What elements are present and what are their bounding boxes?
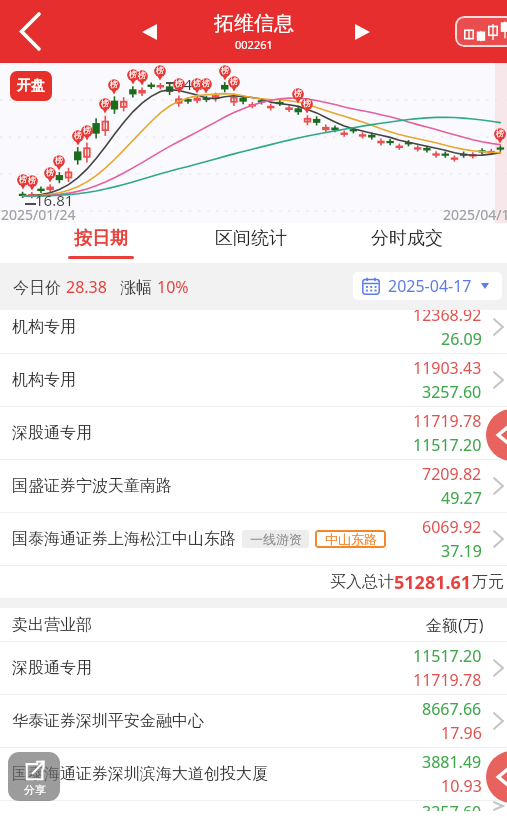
staticText: 按日期 [74,227,128,250]
staticText: 8667.66 [422,698,482,720]
staticText: 榜 [230,76,238,86]
staticText: 涨幅 [120,276,157,298]
staticText: 3257.60 [422,801,482,811]
staticText: 2025/04/1 [443,205,507,224]
staticText: 区间统计 [215,227,287,250]
staticText: 榜 [175,78,183,88]
staticText: 榜 [221,65,229,75]
staticText: 10.93 [441,775,482,797]
button[interactable]: 国泰海通证券深圳滨海大道创投大厦 [0,748,507,800]
staticText: 一线游资 [250,531,302,547]
staticText: 开盘 [17,77,45,95]
staticText: 华泰证券深圳平安金融中心 [12,711,204,731]
staticText: 中山东路 [325,531,377,547]
staticText: 机构专用 [12,317,76,337]
staticText: 7209.82 [422,463,482,485]
staticText: 机构专用 [12,370,76,390]
staticText: 分时成交 [371,227,443,250]
staticText: 拓维信息 [214,11,294,36]
staticText: 11517.20 [413,434,482,456]
staticText: 国泰海通证券上海松江中山东路 [12,529,236,549]
staticText: 万元 [472,572,504,592]
button[interactable]: Next stock [342,11,383,53]
staticText: 金额(万) [426,614,484,636]
button[interactable]: Expand panel [486,409,507,461]
staticText: 17.96 [441,722,482,744]
staticText: 榜 [303,98,311,108]
staticText: 分享 [24,783,46,797]
staticText: 10% [157,276,189,298]
staticText: 3881.49 [422,751,482,773]
button[interactable]: 分时成交 [352,223,462,263]
staticText: 买入总计 [330,572,394,592]
staticText: 11719.78 [413,669,482,691]
staticText: 榜 [46,167,54,177]
staticText: 榜 [28,175,36,185]
staticText: 16.81 [35,190,74,210]
button[interactable]: 机构专用 [0,354,507,406]
staticText: 榜 [294,88,302,98]
staticText: 榜 [101,98,109,108]
staticText: 11903.43 [413,357,482,379]
staticText: 榜 [202,78,210,88]
staticText: 44.1 [175,74,205,94]
staticText: 37.19 [441,540,482,562]
staticText: 榜 [55,155,63,165]
staticText: 002261 [235,37,273,52]
staticText: 榜 [138,70,146,80]
staticText: 26.09 [441,328,482,350]
button[interactable]: Previous stock [129,11,170,53]
staticText: 51281.61 [394,570,472,595]
staticText: 12368.92 [413,310,482,326]
button[interactable]: 按日期 [46,223,156,263]
staticText: 榜 [496,128,504,138]
staticText: 国盛证券宁波天童南路 [12,476,172,496]
staticText: 榜 [83,125,91,135]
staticText: 11719.78 [413,410,482,432]
staticText: 榜 [19,174,27,184]
staticText: 11517.20 [413,645,482,667]
staticText: 2025/01/24 [1,205,76,224]
staticText: 榜 [156,65,164,75]
staticText: 49.27 [441,487,482,509]
staticText: 卖出营业部 [12,615,92,635]
button[interactable]: 深股通专用 [0,642,507,694]
staticText: 28.38 [66,276,107,298]
button[interactable]: 华泰证券深圳平安金融中心 [0,695,507,747]
button[interactable]: 机构专用 [0,310,507,353]
staticText: 6069.92 [422,516,482,538]
staticText: 深股通专用 [12,423,92,443]
button[interactable]: 2025-04-17 [353,272,502,300]
button[interactable]: K line chart [455,16,507,47]
button[interactable]: 3257.60 [0,801,507,811]
button[interactable]: Back [6,8,55,56]
staticText: 榜 [74,130,82,140]
staticText: 国泰海通证券深圳滨海大道创投大厦 [12,764,268,784]
staticText: 3257.60 [422,381,482,403]
staticText: 榜 [110,79,118,89]
staticText: 榜 [129,69,137,79]
button[interactable]: 区间统计 [196,223,306,263]
button[interactable]: Share [8,752,60,801]
staticText: 榜 [193,78,201,88]
button[interactable]: 国泰海通证券上海松江中山东路 [0,513,507,565]
staticText: 今日价 [13,276,66,298]
staticText: 深股通专用 [12,658,92,678]
button[interactable]: 深股通专用 [0,407,507,459]
button[interactable]: 国盛证券宁波天童南路 [0,460,507,512]
staticText: 2025-04-17 [388,275,472,297]
button[interactable]: Expand panel [486,751,507,803]
